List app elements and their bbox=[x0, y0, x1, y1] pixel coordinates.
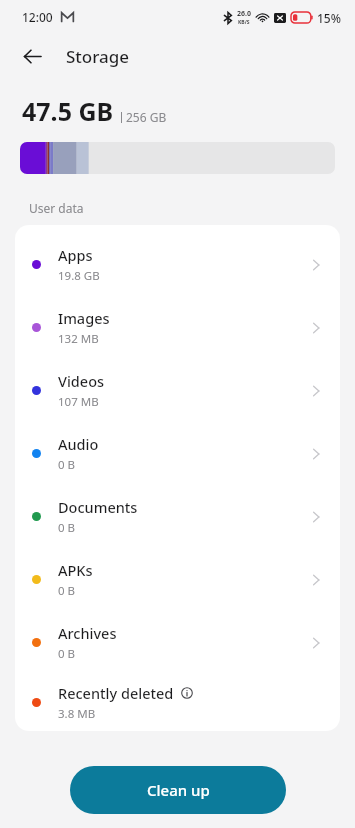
button[interactable]: Archives bbox=[15, 611, 340, 674]
staticText: 0 B bbox=[58, 457, 76, 473]
staticText: 132 MB bbox=[58, 331, 99, 347]
button[interactable]: Back bbox=[14, 38, 50, 74]
staticText: 26.0 bbox=[237, 9, 251, 19]
staticText: 0 B bbox=[58, 646, 76, 662]
button[interactable]: Documents bbox=[15, 485, 340, 548]
button[interactable]: Apps bbox=[15, 233, 340, 296]
staticText: 0 B bbox=[58, 520, 76, 536]
staticText: 107 MB bbox=[58, 394, 99, 410]
staticText: Documents bbox=[58, 497, 138, 517]
button[interactable]: Videos bbox=[15, 359, 340, 422]
staticText: Audio bbox=[58, 434, 99, 454]
staticText: Archives bbox=[58, 623, 117, 643]
staticText: KB/S bbox=[238, 19, 250, 26]
staticText: User data bbox=[29, 200, 84, 216]
staticText: Videos bbox=[58, 371, 105, 391]
staticText: Recently deleted bbox=[58, 683, 174, 703]
staticText: 12:00 bbox=[22, 9, 53, 25]
staticText: Images bbox=[58, 308, 110, 328]
staticText: 15% bbox=[317, 10, 341, 26]
button[interactable]: Audio bbox=[15, 422, 340, 485]
staticText: 3.8 MB bbox=[58, 706, 96, 722]
staticText: Storage bbox=[66, 45, 130, 68]
staticText: 0 B bbox=[58, 583, 76, 599]
staticText: 47.5 GB bbox=[22, 94, 114, 128]
staticText: 256 GB bbox=[126, 109, 167, 125]
staticText: Apps bbox=[58, 245, 93, 265]
button[interactable]: Recently deleted bbox=[15, 674, 340, 731]
button[interactable]: Clean up bbox=[70, 766, 286, 814]
staticText: 19.8 GB bbox=[58, 268, 100, 284]
staticText: Clean up bbox=[147, 780, 210, 800]
staticText: APKs bbox=[58, 560, 93, 580]
button[interactable]: Images bbox=[15, 296, 340, 359]
button[interactable]: APKs bbox=[15, 548, 340, 611]
